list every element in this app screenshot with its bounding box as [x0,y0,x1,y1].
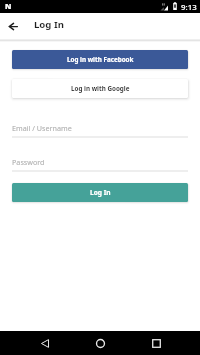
staticText: Log in with Google [71,84,130,93]
button[interactable]: Log in with Facebook [12,50,188,69]
button[interactable]: Home [88,333,112,353]
staticText: Log In [34,18,64,31]
button[interactable]: Back [4,17,22,35]
button[interactable]: Log in with Google [12,79,188,98]
staticText: Log in with Facebook [67,55,134,64]
staticText: Log In [90,188,111,197]
staticText: Password [12,157,45,167]
button[interactable]: Back [33,333,57,353]
staticText: 9:13 [181,2,197,13]
staticText: Email / Username [12,123,72,133]
button[interactable]: Log In [12,183,188,202]
button[interactable]: Recents [144,333,168,353]
staticText: N [5,1,12,11]
